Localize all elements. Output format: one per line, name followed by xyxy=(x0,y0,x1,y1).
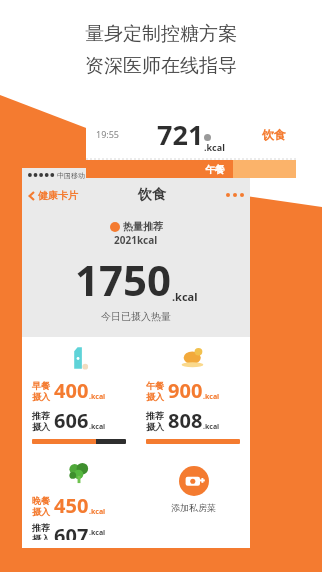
staticText: 2021kcal xyxy=(114,233,158,247)
staticText: 今日已摄入热量 xyxy=(101,310,171,323)
staticText: 900 xyxy=(168,377,203,404)
staticText: 400 xyxy=(54,377,89,404)
staticText: .kcal xyxy=(89,507,106,517)
staticText: 午餐 xyxy=(146,380,164,391)
staticText: 1750 xyxy=(75,251,172,308)
staticText: 推荐 xyxy=(146,410,164,421)
staticText: 早餐 xyxy=(32,380,50,391)
staticText: 推荐 xyxy=(32,522,50,533)
staticText: 热量推荐 xyxy=(123,220,163,233)
staticText: .kcal xyxy=(89,528,106,538)
staticText: 606 xyxy=(54,407,89,434)
staticText: .kcal xyxy=(203,392,220,402)
button[interactable]: 晚餐 xyxy=(22,452,136,548)
other: 添加私房菜 xyxy=(179,466,209,496)
staticText: 饮食 xyxy=(138,186,166,204)
staticText: 添加私房菜 xyxy=(171,502,216,513)
staticText: 量身定制控糖方案 xyxy=(85,22,237,46)
staticText: 721 xyxy=(157,116,204,153)
staticText: 808 xyxy=(168,407,203,434)
staticText: 午餐 xyxy=(205,163,225,176)
staticText: 450 xyxy=(54,492,89,519)
staticText: 推荐 xyxy=(32,410,50,421)
staticText: 19:55 xyxy=(96,128,120,140)
staticText: 摄入 xyxy=(146,421,164,432)
button[interactable]: 健康卡片 xyxy=(28,189,78,202)
button[interactable]: More options xyxy=(226,193,244,197)
staticText: .kcal xyxy=(203,422,220,432)
staticText: .kcal xyxy=(89,422,106,432)
staticText: 健康卡片 xyxy=(38,189,78,202)
staticText: 607 xyxy=(54,522,89,540)
staticText: .kcal xyxy=(204,141,225,153)
staticText: 摄入 xyxy=(32,533,50,540)
staticText: .kcal xyxy=(89,392,106,402)
staticText: 摄入 xyxy=(32,506,50,517)
staticText: 资深医师在线指导 xyxy=(85,54,237,78)
staticText: 中国移动 xyxy=(57,171,85,180)
staticText: .kcal xyxy=(172,289,198,304)
button[interactable]: 早餐 xyxy=(22,337,136,452)
staticText: 摄入 xyxy=(32,391,50,402)
button[interactable]: 午餐 xyxy=(136,337,250,452)
staticText: 晚餐 xyxy=(32,495,50,506)
staticText: 摄入 xyxy=(146,391,164,402)
staticText: 摄入 xyxy=(32,421,50,432)
button[interactable]: 饮食 xyxy=(262,127,286,142)
button[interactable]: 添加私房菜 xyxy=(171,466,216,513)
